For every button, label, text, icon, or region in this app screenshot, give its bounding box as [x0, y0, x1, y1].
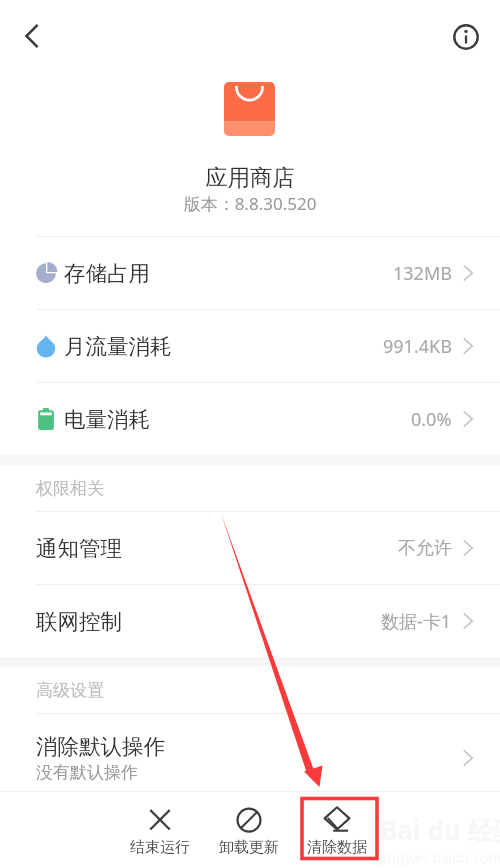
button[interactable]: 联网控制 — [0, 585, 500, 657]
staticText: 应用商店 — [0, 164, 500, 192]
staticText: 132MB — [393, 261, 452, 286]
staticText: 清除数据 — [307, 838, 367, 857]
staticText: 月流量消耗 — [64, 333, 172, 360]
staticText: Bai du 经验 — [380, 812, 500, 848]
staticText: 存储占用 — [64, 260, 150, 287]
staticText: 版本：8.8.30.520 — [0, 192, 500, 215]
staticText: 991.4KB — [383, 334, 452, 359]
staticText: 0.0% — [411, 407, 452, 432]
staticText: 没有默认操作 — [36, 762, 138, 783]
button[interactable]: 卸载更新 — [205, 791, 293, 868]
button[interactable]: 消除默认操作 — [0, 714, 500, 792]
staticText: 电量消耗 — [64, 406, 150, 433]
button[interactable]: Info — [444, 15, 488, 59]
staticText: 联网控制 — [36, 608, 122, 635]
staticText: 结束运行 — [130, 838, 190, 857]
staticText: 通知管理 — [36, 535, 122, 562]
staticText: 卸载更新 — [219, 838, 279, 857]
button[interactable]: 通知管理 — [0, 512, 500, 584]
staticText: 数据-卡1 — [381, 609, 452, 634]
staticText: 不允许 — [398, 537, 452, 560]
staticText: 权限相关 — [36, 478, 104, 499]
button[interactable]: 清除数据 — [293, 791, 381, 868]
button[interactable]: Back — [10, 14, 54, 58]
staticText: 高级设置 — [36, 680, 104, 701]
button[interactable]: 存储占用 — [0, 237, 500, 309]
button[interactable]: 电量消耗 — [0, 383, 500, 455]
staticText: 消除默认操作 — [36, 733, 165, 760]
button[interactable]: 月流量消耗 — [0, 310, 500, 382]
button[interactable]: 结束运行 — [116, 791, 204, 868]
